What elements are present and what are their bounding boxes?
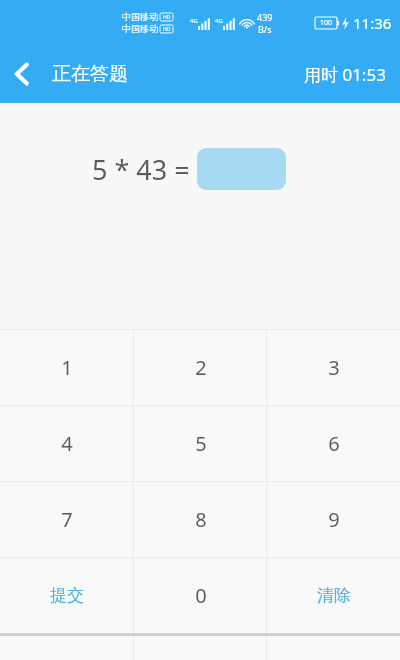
staticText: 0 [195, 582, 207, 609]
staticText: 用时 01:53 [304, 63, 386, 86]
staticText: 中国移动 [122, 11, 158, 22]
staticText: 11:36 [353, 13, 392, 33]
staticText: B/s [258, 23, 272, 35]
staticText: 1 [61, 354, 73, 381]
button[interactable]: 1 [0, 330, 134, 405]
staticText: 4 [61, 430, 73, 457]
staticText: 正在答题 [52, 62, 128, 86]
staticText: 100 [320, 18, 333, 28]
staticText: 7 [61, 506, 73, 533]
button[interactable]: 5 [134, 406, 267, 481]
staticText: 8 [195, 506, 207, 533]
staticText: HD [163, 26, 171, 33]
button[interactable]: 0 [134, 558, 267, 633]
staticText: 4G [190, 17, 198, 25]
button[interactable]: 2 [134, 330, 267, 405]
button[interactable]: 4 [0, 406, 134, 481]
staticText: 6 [328, 430, 340, 457]
staticText: 提交 [50, 585, 84, 606]
staticText: 4G [215, 17, 223, 25]
button[interactable]: 9 [267, 482, 400, 557]
button[interactable] [197, 148, 286, 190]
button[interactable]: 提交 [0, 558, 134, 633]
staticText: 清除 [317, 585, 351, 606]
staticText: 5 [195, 430, 207, 457]
staticText: 5 * 43 = [92, 151, 197, 188]
button[interactable]: Back [0, 54, 42, 94]
button[interactable]: 清除 [267, 558, 400, 633]
staticText: 3 [328, 354, 340, 381]
staticText: 9 [328, 506, 340, 533]
staticText: HD [163, 14, 171, 21]
button[interactable]: 6 [267, 406, 400, 481]
staticText: 439 [257, 11, 273, 23]
staticText: 中国移动 [122, 23, 158, 34]
button[interactable]: 3 [267, 330, 400, 405]
button[interactable]: 7 [0, 482, 134, 557]
staticText: 2 [195, 354, 207, 381]
button[interactable]: 8 [134, 482, 267, 557]
